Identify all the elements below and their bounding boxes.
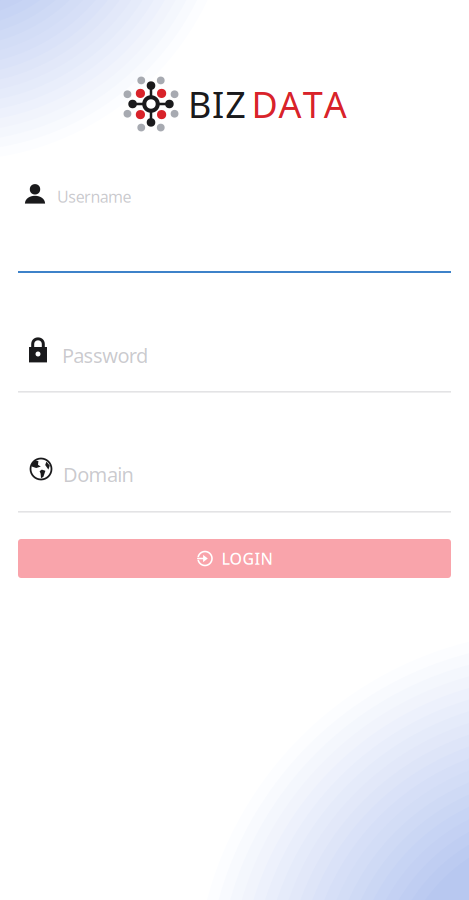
staticText: LOGIN [221,548,272,569]
staticText: Username [57,186,131,207]
staticText: Domain [63,461,133,488]
staticText: Z [225,80,246,128]
staticText: A [324,80,347,128]
button[interactable]: LOGIN [18,539,451,578]
staticText: D [251,80,277,128]
staticText: A [279,80,302,128]
staticText: B [188,80,211,128]
staticText: T [303,80,323,128]
staticText: Password [62,342,148,369]
staticText: I [212,80,224,128]
